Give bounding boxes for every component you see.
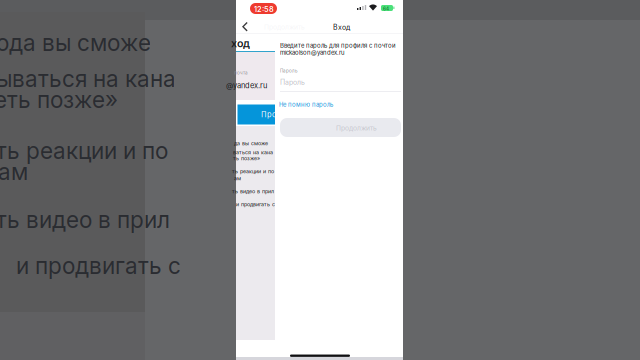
staticText: ть видео в прил bbox=[232, 188, 274, 194]
staticText: 64 bbox=[383, 6, 389, 12]
staticText: Продолжить bbox=[336, 124, 377, 132]
staticText: ть видео в прил bbox=[0, 206, 170, 233]
staticText: почта bbox=[234, 70, 248, 75]
staticText: ть реакции и по bbox=[0, 137, 168, 164]
button[interactable]: Не помню пароль bbox=[275, 0, 329, 7]
staticText: Про bbox=[261, 110, 276, 119]
staticText: 12:58 bbox=[254, 5, 274, 14]
staticText: да вы сможе bbox=[234, 140, 268, 146]
staticText: Введите пароль для профиля с почтой bbox=[280, 42, 396, 49]
staticText: Пароль bbox=[280, 78, 305, 86]
staticText: ть позже» bbox=[233, 155, 260, 161]
staticText: и продвигать с bbox=[236, 201, 275, 207]
staticText: ам bbox=[234, 175, 241, 181]
staticText: ть реакции и по bbox=[232, 168, 274, 174]
staticText: еть позже» bbox=[0, 86, 118, 113]
staticText: ываться на кана bbox=[0, 65, 176, 92]
staticText: и продвигать с bbox=[16, 252, 181, 279]
staticText: ход bbox=[231, 37, 250, 50]
staticText: Вход bbox=[333, 23, 350, 31]
staticText: mickaolson@yandex.ru bbox=[280, 49, 345, 56]
staticText: ваться на кана bbox=[233, 149, 273, 155]
staticText: Пароль bbox=[280, 68, 298, 73]
staticText: ода вы сможе bbox=[0, 29, 151, 56]
staticText: Не помню пароль bbox=[279, 101, 333, 108]
staticText: @yandex.ru bbox=[226, 81, 267, 90]
staticText: ам bbox=[0, 158, 28, 185]
button[interactable]: Продолжить bbox=[275, 0, 396, 19]
